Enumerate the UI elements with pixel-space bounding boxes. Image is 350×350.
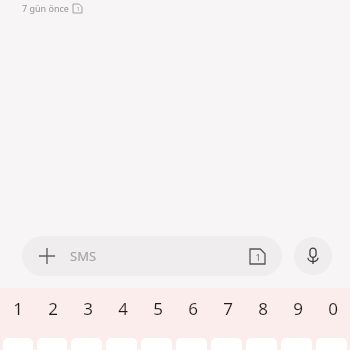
button[interactable]: 5: [140, 297, 175, 319]
staticText: 5: [153, 297, 163, 319]
staticText: 6: [188, 297, 198, 319]
button[interactable]: 0: [315, 297, 350, 319]
button[interactable]: 2: [35, 297, 70, 319]
button[interactable]: SIM 1: [246, 245, 268, 267]
button[interactable]: 6: [175, 297, 210, 319]
staticText: 7 gün önce: [22, 2, 69, 14]
staticText: 3: [83, 297, 93, 319]
staticText: 2: [48, 297, 58, 319]
staticText: 1: [255, 251, 261, 263]
button[interactable]: 9: [280, 297, 315, 319]
staticText: 7: [223, 297, 233, 319]
button[interactable]: 1: [0, 297, 35, 319]
button[interactable]: Voice message: [294, 237, 332, 275]
staticText: 0: [328, 297, 338, 319]
button[interactable]: 8: [245, 297, 280, 319]
staticText: 1: [13, 297, 23, 319]
staticText: 9: [293, 297, 303, 319]
staticText: 8: [258, 297, 268, 319]
button[interactable]: 4: [105, 297, 140, 319]
button[interactable]: 3: [70, 297, 105, 319]
button[interactable]: Attach: [36, 245, 58, 267]
staticText: SMS: [70, 247, 246, 265]
staticText: 4: [118, 297, 128, 319]
staticText: 1: [76, 5, 80, 12]
button[interactable]: Attach: [22, 236, 282, 276]
button[interactable]: 7: [210, 297, 245, 319]
